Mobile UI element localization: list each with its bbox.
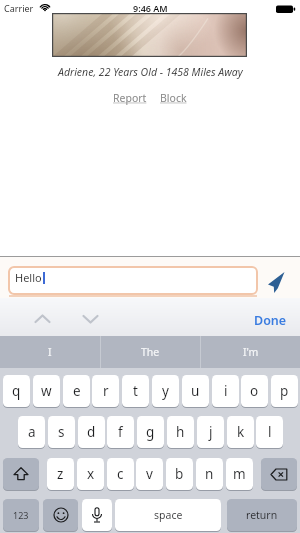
button[interactable] xyxy=(34,314,51,324)
button[interactable]: p xyxy=(271,375,298,407)
staticText: 9:46 AM xyxy=(133,2,168,14)
staticText: o xyxy=(250,382,259,400)
staticText: n xyxy=(205,465,214,483)
staticText: y xyxy=(162,382,169,400)
button[interactable] xyxy=(264,268,288,296)
staticText: i xyxy=(224,382,228,400)
button[interactable]: The xyxy=(101,336,200,368)
button[interactable]: Report xyxy=(113,91,147,105)
staticText: l xyxy=(268,423,272,441)
button[interactable]: Block xyxy=(160,91,187,105)
button[interactable]: m xyxy=(226,458,253,490)
staticText: j xyxy=(209,423,213,441)
staticText: s xyxy=(58,423,65,441)
button[interactable]: g xyxy=(137,416,164,448)
button[interactable]: I xyxy=(0,336,100,368)
staticText: t xyxy=(133,382,138,400)
staticText: Carrier xyxy=(4,2,34,14)
button[interactable]: n xyxy=(196,458,223,490)
button[interactable]: c xyxy=(107,458,134,490)
button[interactable] xyxy=(82,314,99,324)
staticText: b xyxy=(175,465,184,483)
staticText: Done xyxy=(254,312,287,329)
button[interactable] xyxy=(82,499,112,531)
button[interactable]: h xyxy=(167,416,194,448)
staticText: h xyxy=(176,423,185,441)
button[interactable]: u xyxy=(182,375,209,407)
button[interactable]: k xyxy=(227,416,254,448)
staticText: u xyxy=(191,382,200,400)
staticText: 123 xyxy=(13,509,29,521)
button[interactable]: x xyxy=(77,458,104,490)
button[interactable]: b xyxy=(166,458,193,490)
staticText: m xyxy=(233,465,246,483)
button[interactable]: y xyxy=(152,375,179,407)
button[interactable] xyxy=(261,458,297,490)
button[interactable]: z xyxy=(47,458,74,490)
staticText: Hello xyxy=(15,270,42,285)
staticText: I'm xyxy=(243,345,259,359)
button[interactable]: return xyxy=(227,499,297,531)
button[interactable]: q xyxy=(3,375,30,407)
button[interactable]: I'm xyxy=(201,336,300,368)
staticText: space xyxy=(154,508,183,522)
staticText: v xyxy=(146,465,153,483)
staticText: a xyxy=(28,423,36,441)
staticText: d xyxy=(87,423,96,441)
staticText: w xyxy=(41,382,52,400)
staticText: return xyxy=(246,508,278,522)
staticText: k xyxy=(237,423,245,441)
button[interactable]: space xyxy=(115,499,221,531)
button[interactable] xyxy=(3,458,39,490)
button[interactable]: s xyxy=(48,416,75,448)
button[interactable]: e xyxy=(63,375,90,407)
button[interactable]: r xyxy=(92,375,119,407)
button[interactable]: j xyxy=(197,416,224,448)
staticText: c xyxy=(117,465,124,483)
button[interactable]: o xyxy=(241,375,268,407)
button[interactable]: v xyxy=(136,458,163,490)
staticText: r xyxy=(103,382,109,400)
button[interactable] xyxy=(43,499,78,531)
button[interactable]: d xyxy=(78,416,105,448)
button[interactable]: t xyxy=(122,375,149,407)
button[interactable]: i xyxy=(212,375,239,407)
button[interactable]: 123 xyxy=(3,499,39,531)
button[interactable]: Hello xyxy=(8,266,258,295)
button[interactable]: f xyxy=(107,416,134,448)
staticText: e xyxy=(73,382,81,400)
button[interactable]: a xyxy=(18,416,45,448)
button[interactable]: Done xyxy=(254,312,287,329)
staticText: f xyxy=(118,423,123,441)
staticText: z xyxy=(57,465,64,483)
staticText: The xyxy=(141,345,160,359)
staticText: g xyxy=(146,423,155,441)
staticText: q xyxy=(12,382,21,400)
staticText: I xyxy=(48,345,52,359)
staticText: p xyxy=(280,382,289,400)
button[interactable]: w xyxy=(33,375,60,407)
staticText: Adriene, 22 Years Old - 1458 Miles Away xyxy=(58,65,243,79)
staticText: x xyxy=(87,465,95,483)
button[interactable]: l xyxy=(256,416,283,448)
